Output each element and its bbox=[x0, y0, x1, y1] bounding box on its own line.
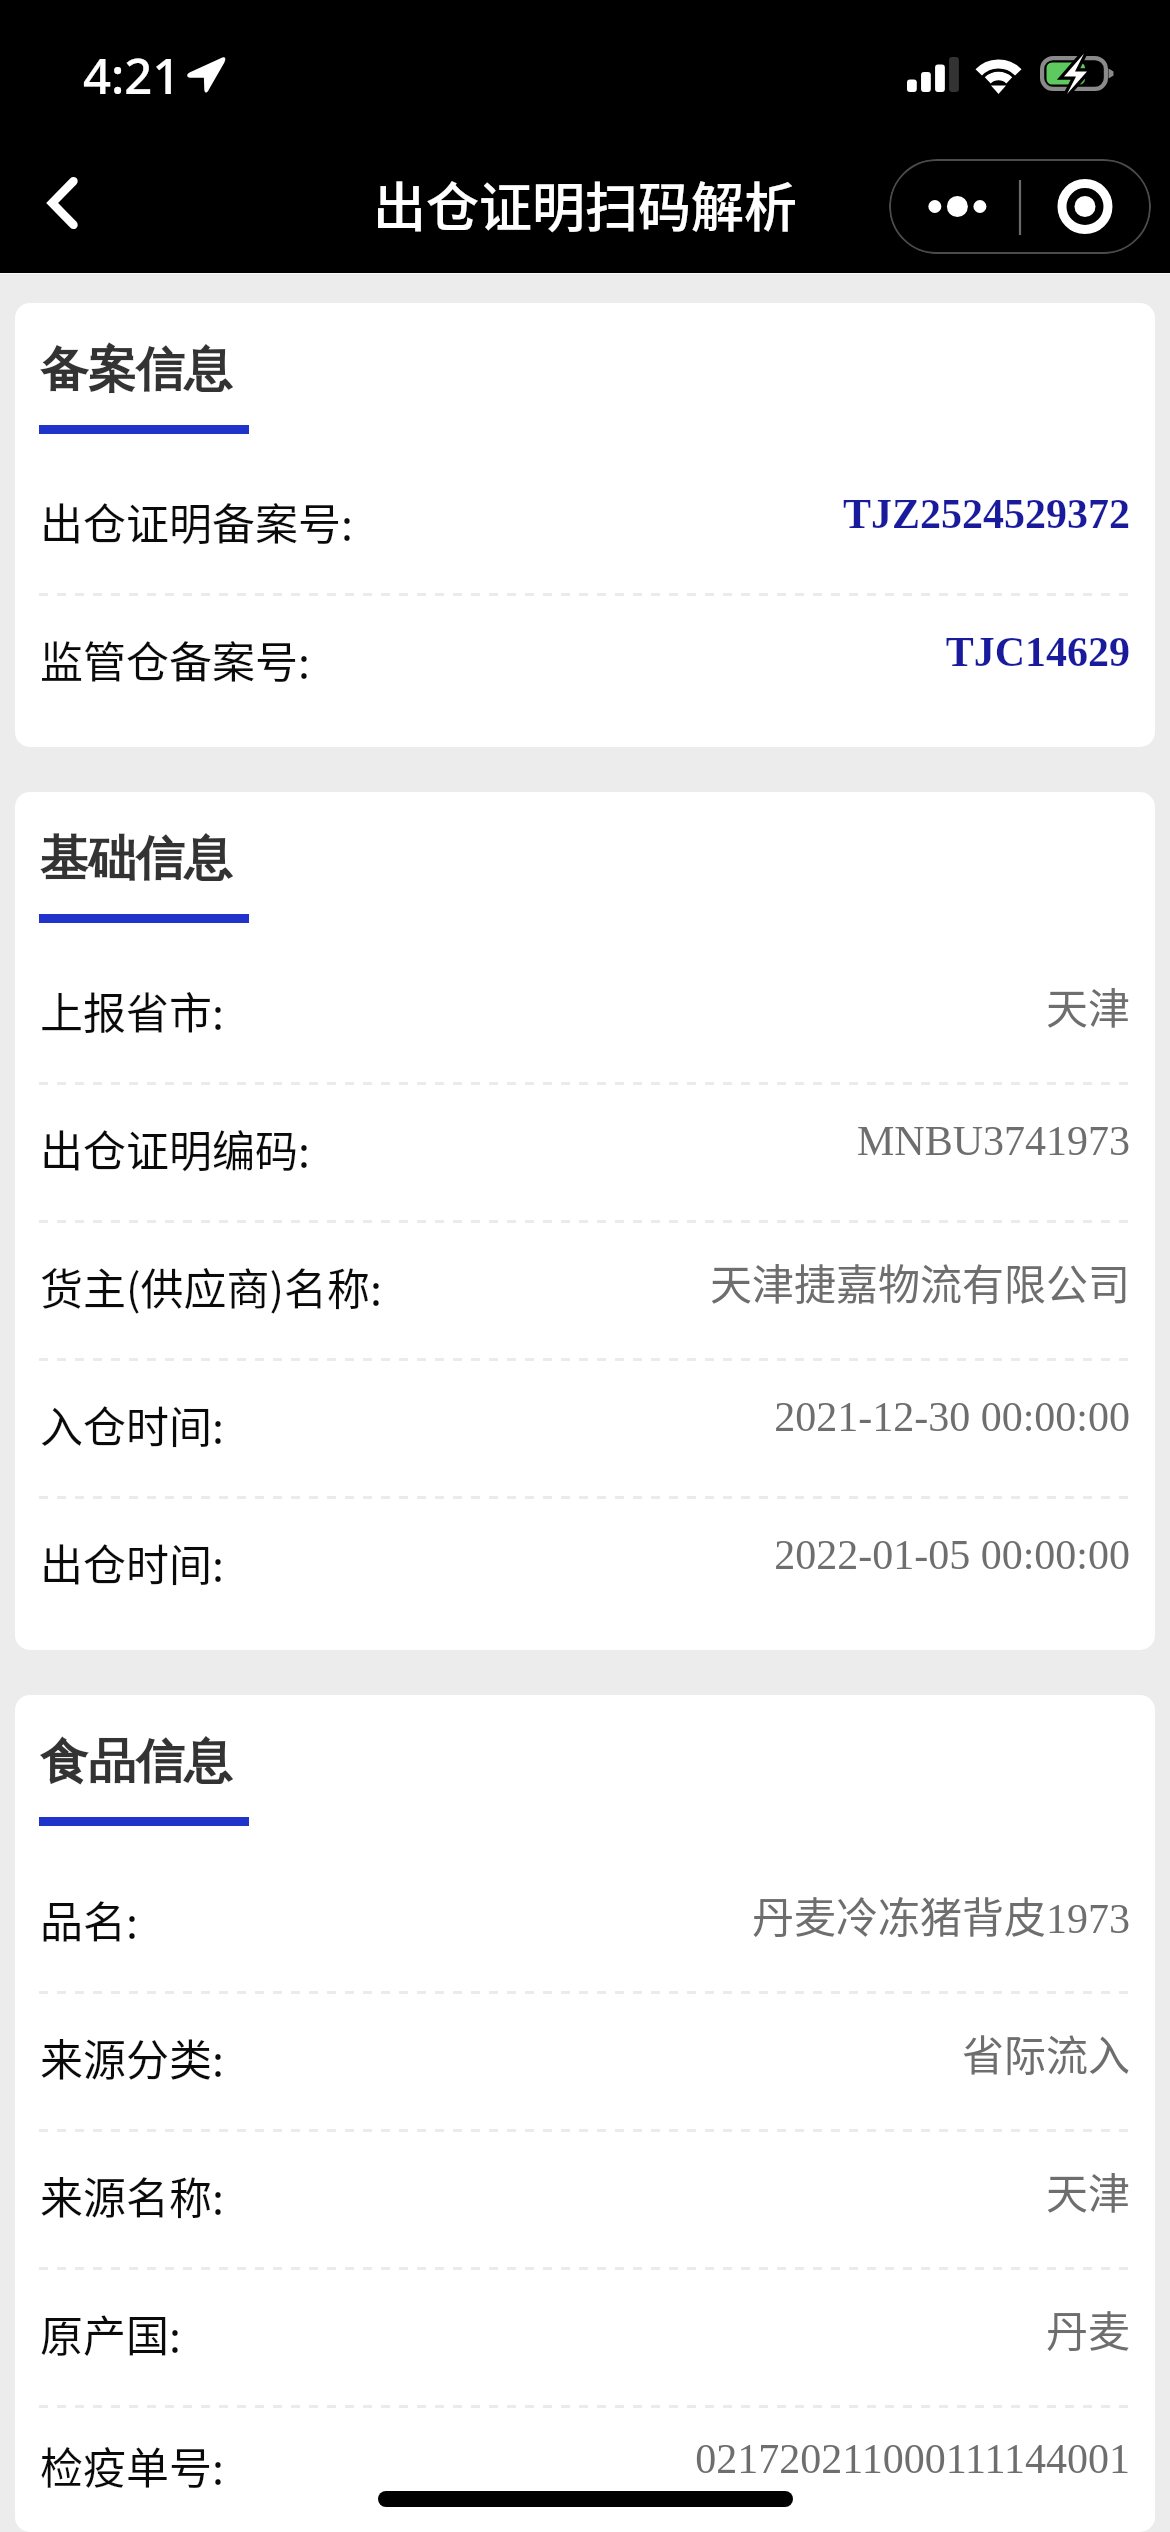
staticText: 天津 bbox=[230, 2160, 1130, 2221]
staticText: 出仓证明备案号: bbox=[40, 490, 353, 552]
staticText: 丹麦 bbox=[187, 2298, 1130, 2359]
staticText: 上报省市: bbox=[40, 979, 224, 1041]
staticText: 出仓证明扫码解析 bbox=[373, 166, 797, 243]
staticText: 出仓时间: bbox=[40, 1531, 224, 1593]
staticText: 2021-12-30 00:00:00 bbox=[230, 1394, 1130, 1441]
staticText: 食品信息 bbox=[40, 1732, 232, 1792]
staticText: 基础信息 bbox=[40, 829, 232, 889]
staticText: 货主(供应商)名称: bbox=[40, 1255, 383, 1317]
staticText: 来源名称: bbox=[40, 2164, 224, 2226]
staticText: 监管仓备案号: bbox=[40, 628, 310, 690]
button[interactable]: More options bbox=[889, 159, 1151, 254]
staticText: 2022-01-05 00:00:00 bbox=[230, 1532, 1130, 1579]
staticText: TJZ2524529372 bbox=[359, 491, 1130, 538]
button[interactable]: Back bbox=[20, 161, 104, 245]
staticText: 备案信息 bbox=[40, 340, 232, 400]
staticText: 入仓时间: bbox=[40, 1393, 224, 1455]
staticText: 品名: bbox=[40, 1888, 138, 1950]
staticText: 来源分类: bbox=[40, 2026, 224, 2088]
staticText: TJC14629 bbox=[316, 629, 1130, 676]
staticText: 021720211000111144001 bbox=[230, 2436, 1130, 2483]
staticText: MNBU3741973 bbox=[316, 1118, 1130, 1165]
staticText: 检疫单号: bbox=[40, 2434, 224, 2496]
staticText: 出仓证明编码: bbox=[40, 1117, 310, 1179]
staticText: 省际流入 bbox=[230, 2022, 1130, 2083]
staticText: 丹麦冷冻猪背皮1973 bbox=[144, 1884, 1130, 1945]
staticText: 4:21 bbox=[83, 42, 181, 109]
staticText: 天津捷嘉物流有限公司 bbox=[389, 1251, 1130, 1312]
staticText: 原产国: bbox=[40, 2302, 181, 2364]
staticText: 天津 bbox=[230, 975, 1130, 1036]
